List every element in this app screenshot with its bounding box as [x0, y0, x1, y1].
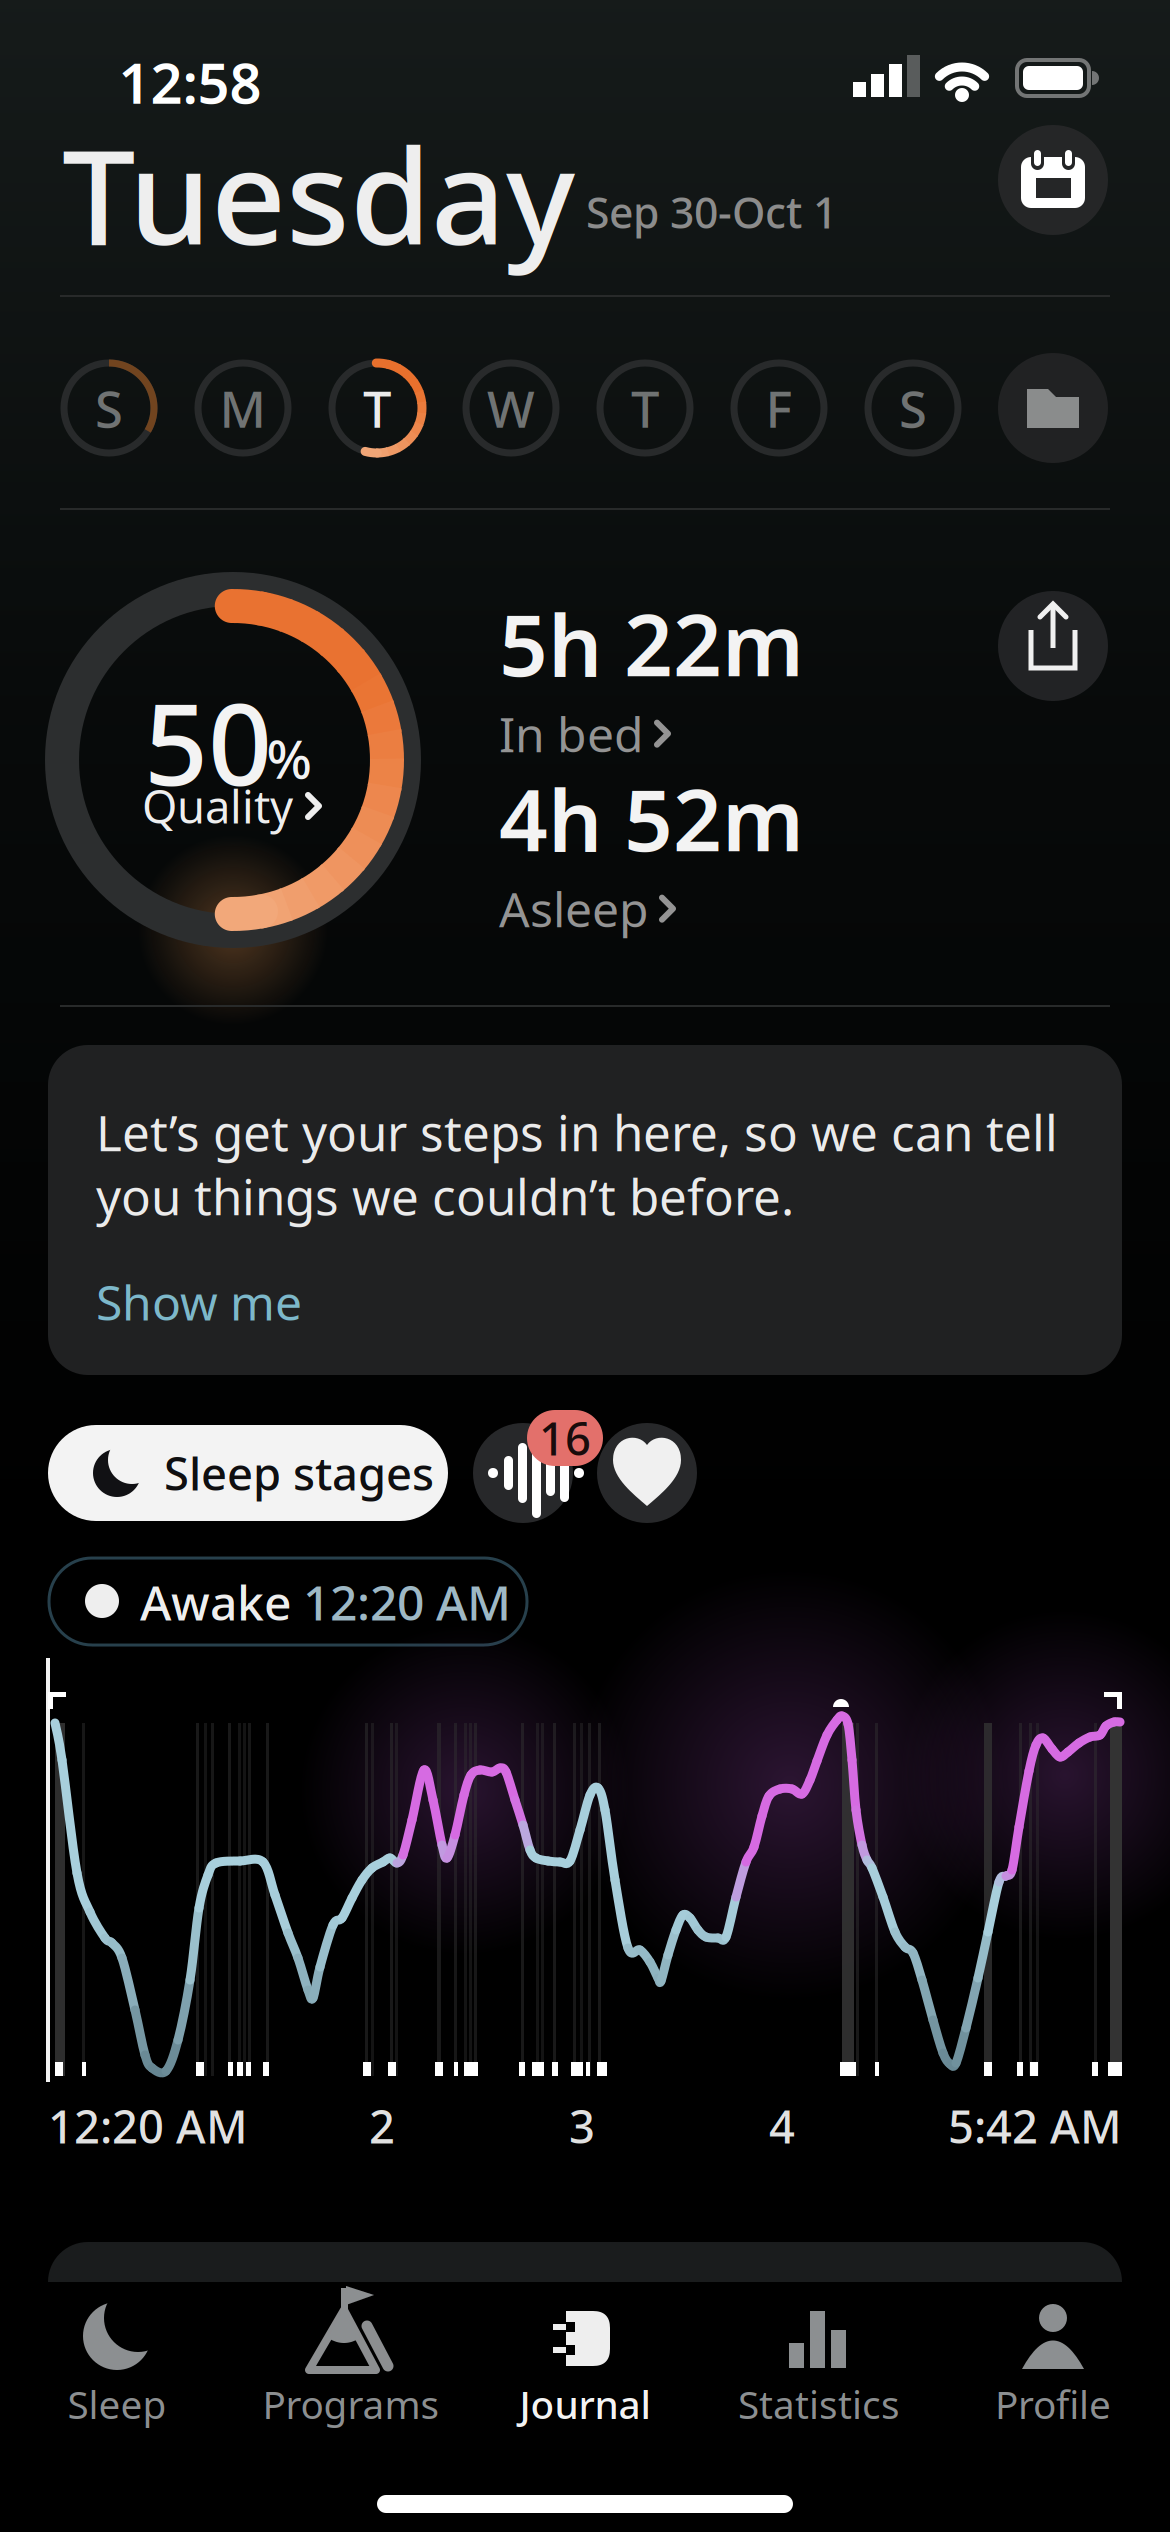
staticText: Statistics [738, 2378, 900, 2430]
button[interactable]: S [64, 363, 154, 453]
button[interactable]: Quality [128, 780, 338, 832]
staticText: 3 [569, 2096, 595, 2156]
button[interactable]: M [198, 363, 288, 453]
staticText: In bed [499, 702, 644, 765]
button[interactable]: Sleep stages [48, 1425, 448, 1521]
staticText: Let’s get your steps in here, so we can … [96, 1099, 1058, 1165]
button[interactable]: In bed [499, 601, 919, 751]
staticText: 12:20 AM [48, 2096, 248, 2156]
staticText: Asleep [499, 877, 649, 940]
staticText: you things we couldn’t before. [96, 1163, 794, 1229]
staticText: S [899, 374, 927, 442]
staticText: 5:42 AM [948, 2096, 1122, 2156]
staticText: 5h 22m [499, 586, 804, 700]
staticText: Sep 30-Oct 1 [586, 184, 837, 240]
button[interactable]: T [600, 363, 690, 453]
staticText: Show me [96, 1270, 302, 1334]
staticText: Programs [262, 2378, 439, 2430]
staticText: Journal [519, 2378, 650, 2430]
staticText: T [631, 374, 659, 442]
staticText: Sleep [67, 2378, 166, 2430]
staticText: 12:58 [118, 45, 261, 119]
button[interactable]: Awake [49, 1558, 527, 1645]
staticText: W [487, 374, 535, 442]
button[interactable]: S [868, 363, 958, 453]
staticText: Quality [142, 776, 293, 836]
button[interactable]: Profile [936, 2286, 1170, 2446]
button[interactable]: Asleep [499, 776, 919, 926]
staticText: Tuesday [62, 107, 575, 281]
staticText: 16 [539, 1408, 591, 1468]
staticText: Awake [140, 1570, 292, 1634]
staticText: M [219, 374, 266, 442]
button[interactable]: Show me [96, 1274, 326, 1330]
staticText: Profile [995, 2378, 1111, 2430]
staticText: 50 [144, 668, 272, 816]
button[interactable]: T [332, 363, 422, 453]
staticText: 4 [769, 2096, 795, 2156]
staticText: 12:20 AM [303, 1570, 511, 1634]
button[interactable]: Programs [234, 2286, 468, 2446]
staticText: 2 [369, 2096, 395, 2156]
button[interactable]: Archive [998, 353, 1108, 463]
button[interactable]: Calendar [998, 125, 1108, 235]
button[interactable]: Statistics [702, 2286, 936, 2446]
staticText: Sleep stages [164, 1443, 434, 1503]
staticText: % [266, 723, 311, 793]
button[interactable]: Sound clips [473, 1410, 603, 1523]
button[interactable]: Sleep [0, 2286, 234, 2446]
staticText: 4h 52m [499, 761, 804, 875]
button[interactable]: Share [998, 591, 1108, 701]
button[interactable]: F [734, 363, 824, 453]
button[interactable]: Journal [468, 2286, 702, 2446]
button[interactable]: Favorites [597, 1423, 697, 1523]
staticText: T [363, 374, 391, 442]
staticText: S [95, 374, 123, 442]
button[interactable]: W [466, 363, 556, 453]
staticText: F [765, 374, 792, 442]
